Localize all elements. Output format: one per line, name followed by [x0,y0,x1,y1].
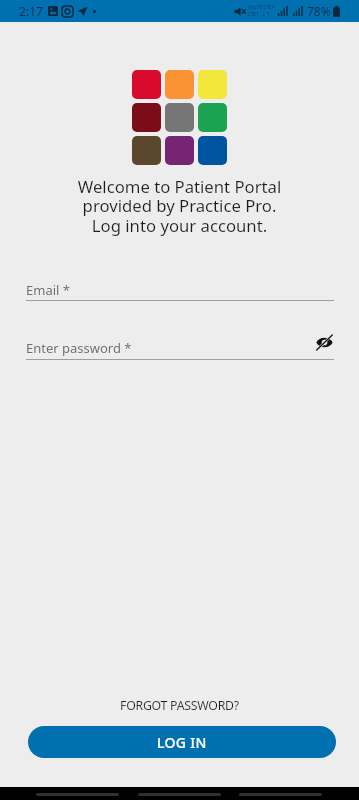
button[interactable]: FORGOT PASSWORD? [0,693,359,717]
staticText: Email * [26,281,70,299]
staticText: LTE1 ↓↑ [248,11,270,18]
staticText: LOG IN [157,733,207,752]
button[interactable]: Recents [36,793,119,796]
staticText: Enter password * [26,339,132,357]
staticText: 78% [307,3,331,19]
staticText: FORGOT PASSWORD? [120,697,239,714]
button[interactable]: Home [138,793,221,796]
staticText: VoLTE LTE+ [248,4,275,11]
button[interactable]: Show password [312,330,336,354]
button[interactable]: Back [239,793,322,796]
staticText: Welcome to Patient Portal provided by Pr… [0,175,359,237]
staticText: 2:17 [19,3,43,19]
button[interactable]: LOG IN [28,726,336,758]
